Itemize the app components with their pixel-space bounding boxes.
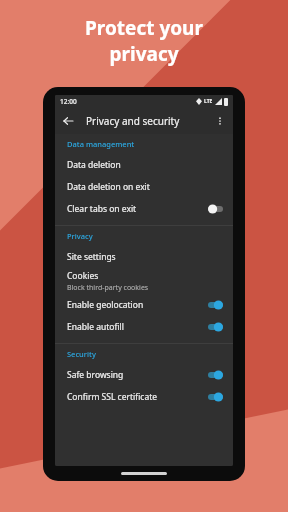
button[interactable]: Back (55, 108, 81, 134)
staticText: Clear tabs on exit (67, 203, 137, 215)
button[interactable]: Toggle off (201, 203, 223, 215)
staticText: privacy (109, 41, 179, 67)
button[interactable]: Toggle on (201, 369, 223, 381)
button[interactable]: Enable autofill (55, 316, 233, 338)
button[interactable]: Enable geolocation (55, 294, 233, 316)
button[interactable]: Site settings (55, 246, 233, 268)
staticText: Enable autofill (67, 321, 124, 333)
button[interactable]: Confirm SSL certificate (55, 386, 233, 408)
button[interactable]: More options (207, 108, 233, 134)
staticText: Enable geolocation (67, 299, 144, 311)
staticText: Safe browsing (67, 369, 124, 381)
button[interactable]: Toggle on (201, 391, 223, 403)
button[interactable]: Data deletion (55, 154, 233, 176)
button[interactable]: Clear tabs on exit (55, 198, 233, 220)
staticText: Privacy and security (86, 114, 180, 128)
staticText: Block third-party cookies (67, 283, 149, 293)
staticText: Site settings (67, 251, 116, 263)
button[interactable]: Data deletion on exit (55, 176, 233, 198)
button[interactable]: Safe browsing (55, 364, 233, 386)
staticText: Privacy (67, 231, 93, 241)
staticText: Security (67, 349, 96, 359)
staticText: Protect your (85, 15, 203, 41)
button[interactable]: Toggle on (201, 321, 223, 333)
staticText: Data deletion on exit (67, 181, 150, 193)
staticText: Data deletion (67, 159, 121, 171)
button[interactable]: Cookies (55, 268, 233, 294)
staticText: 12:00 (60, 97, 77, 106)
staticText: Data management (67, 139, 135, 149)
staticText: LTE (204, 98, 213, 105)
staticText: Cookies (67, 270, 99, 282)
button[interactable]: Toggle on (201, 299, 223, 311)
staticText: Confirm SSL certificate (67, 391, 158, 403)
